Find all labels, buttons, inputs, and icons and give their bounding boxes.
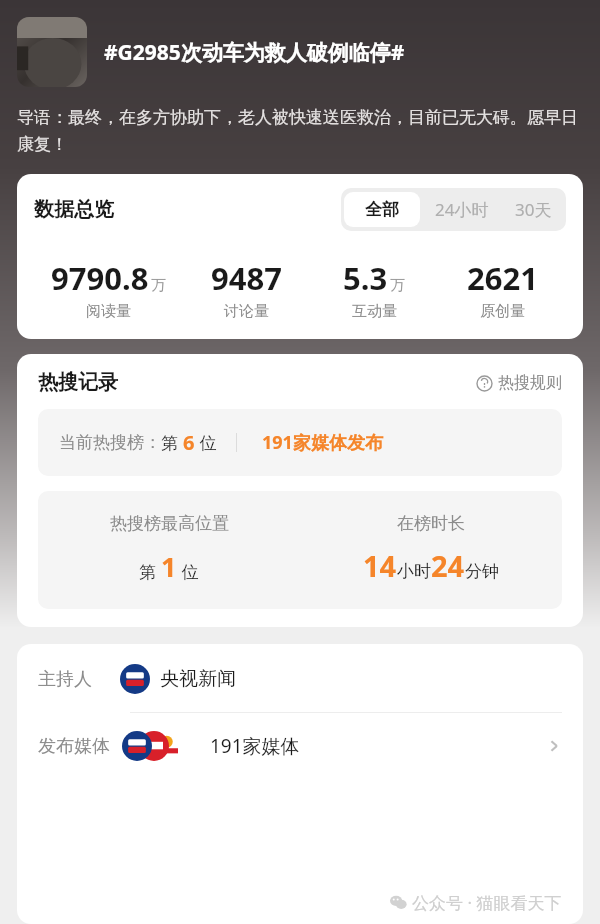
staticText: 万 (390, 276, 405, 295)
staticText: 万 (151, 276, 166, 295)
staticText: 当前热搜榜： (59, 432, 161, 453)
staticText: 小时 (397, 561, 431, 582)
staticText: 发布媒体 (38, 735, 110, 758)
staticText: 数据总览 (34, 197, 114, 222)
staticText: 第 (161, 431, 183, 454)
button[interactable]: 主持人 (17, 644, 583, 712)
staticText: 24小时 (435, 198, 489, 221)
staticText: 2621 (467, 257, 538, 299)
staticText: 讨论量 (224, 302, 269, 321)
staticText: 191家媒体发布 (262, 430, 383, 455)
button[interactable]: 30天 (504, 191, 563, 228)
staticText: 主持人 (38, 668, 92, 691)
other: 查看发布媒体 (546, 738, 562, 754)
staticText: 央视新闻 (160, 667, 236, 691)
button[interactable]: 热搜规则 (476, 373, 562, 393)
staticText: 全部 (365, 199, 399, 220)
button[interactable]: 24小时 (420, 191, 504, 228)
staticText: 24 (431, 546, 465, 585)
staticText: 位 (195, 431, 217, 454)
button[interactable]: 当前热搜榜： (38, 409, 562, 476)
staticText: 9790.8 (51, 257, 149, 299)
staticText: 位 (177, 560, 199, 583)
staticText: 互动量 (352, 302, 397, 321)
staticText: 5.3 (343, 257, 388, 299)
staticText: 热搜榜最高位置 (110, 513, 229, 534)
staticText: 第 (139, 560, 161, 583)
staticText: 分钟 (465, 561, 499, 582)
staticText: #G2985次动车为救人破例临停# (104, 38, 583, 67)
staticText: 6 (183, 429, 195, 456)
staticText: 1 (161, 548, 177, 585)
staticText: 原创量 (480, 302, 525, 321)
staticText: 在榜时长 (397, 513, 465, 534)
button[interactable]: 全部 (344, 192, 420, 227)
staticText: 公众号 · 猫眼看天下 (412, 891, 562, 914)
staticText: 30天 (515, 198, 552, 221)
staticText: 热搜记录 (38, 370, 118, 395)
staticText: 导语：最终，在多方协助下，老人被快速送医救治，目前已无大碍。愿早日康复！ (17, 107, 583, 155)
staticText: 14 (363, 546, 397, 585)
staticText: 热搜规则 (498, 373, 562, 393)
staticText: 191家媒体 (210, 733, 300, 759)
staticText: 阅读量 (86, 302, 131, 321)
staticText: 9487 (211, 257, 282, 299)
button[interactable]: 发布媒体 (17, 713, 583, 777)
